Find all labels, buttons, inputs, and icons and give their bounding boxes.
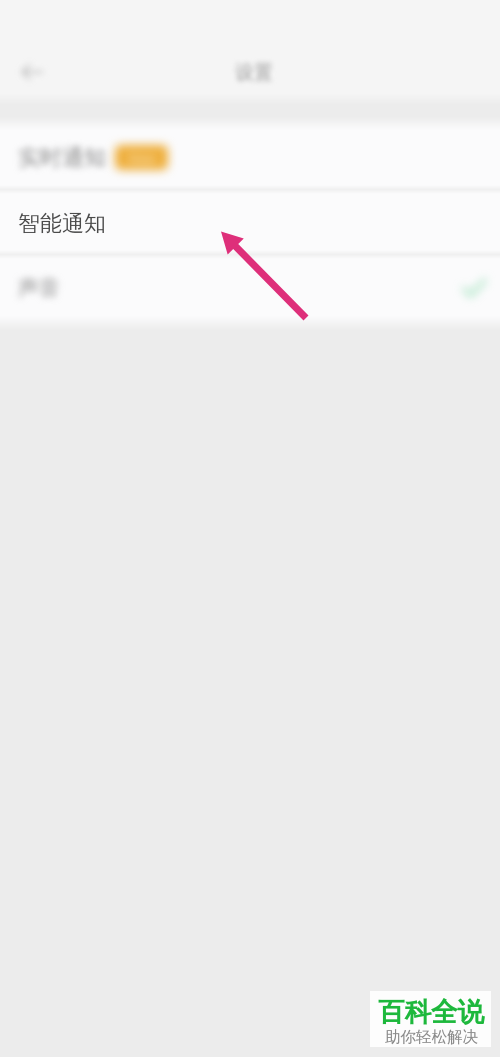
button[interactable]: 声音 xyxy=(0,254,500,322)
button[interactable]: Back xyxy=(4,44,60,100)
staticText: New xyxy=(128,149,156,167)
button[interactable]: Enabled xyxy=(461,275,487,301)
staticText: 百科全说 xyxy=(378,995,484,1028)
staticText: 助你轻松解决 xyxy=(385,1027,478,1047)
staticText: 声音 xyxy=(18,275,60,301)
staticText: 智能通知 xyxy=(18,210,106,238)
button[interactable]: 智能通知 xyxy=(0,189,500,254)
staticText: 设置 xyxy=(235,61,273,85)
staticText: 实时通知 xyxy=(18,144,106,172)
button[interactable]: 实时通知 xyxy=(0,120,500,189)
